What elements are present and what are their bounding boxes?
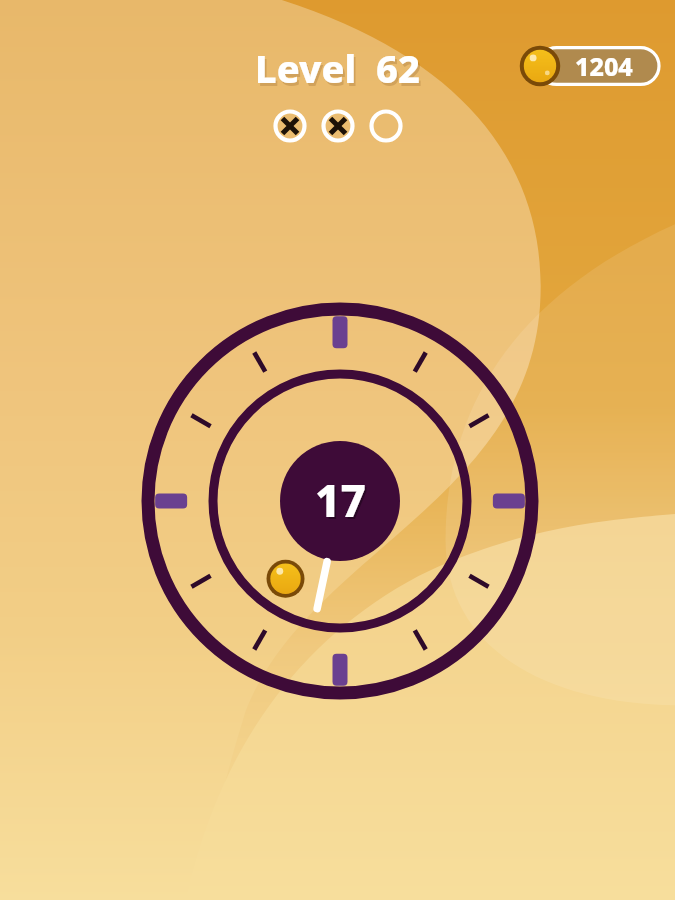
button[interactable]: Game dial, 17 remaining: [0, 0, 675, 900]
staticText: 17: [317, 472, 368, 532]
staticText: Level 62: [257, 45, 422, 97]
staticText: 1204: [575, 49, 633, 83]
staticText: 17: [315, 470, 366, 530]
staticText: Level 62: [255, 42, 420, 94]
button[interactable]: Coins: 1204: [517, 43, 659, 89]
